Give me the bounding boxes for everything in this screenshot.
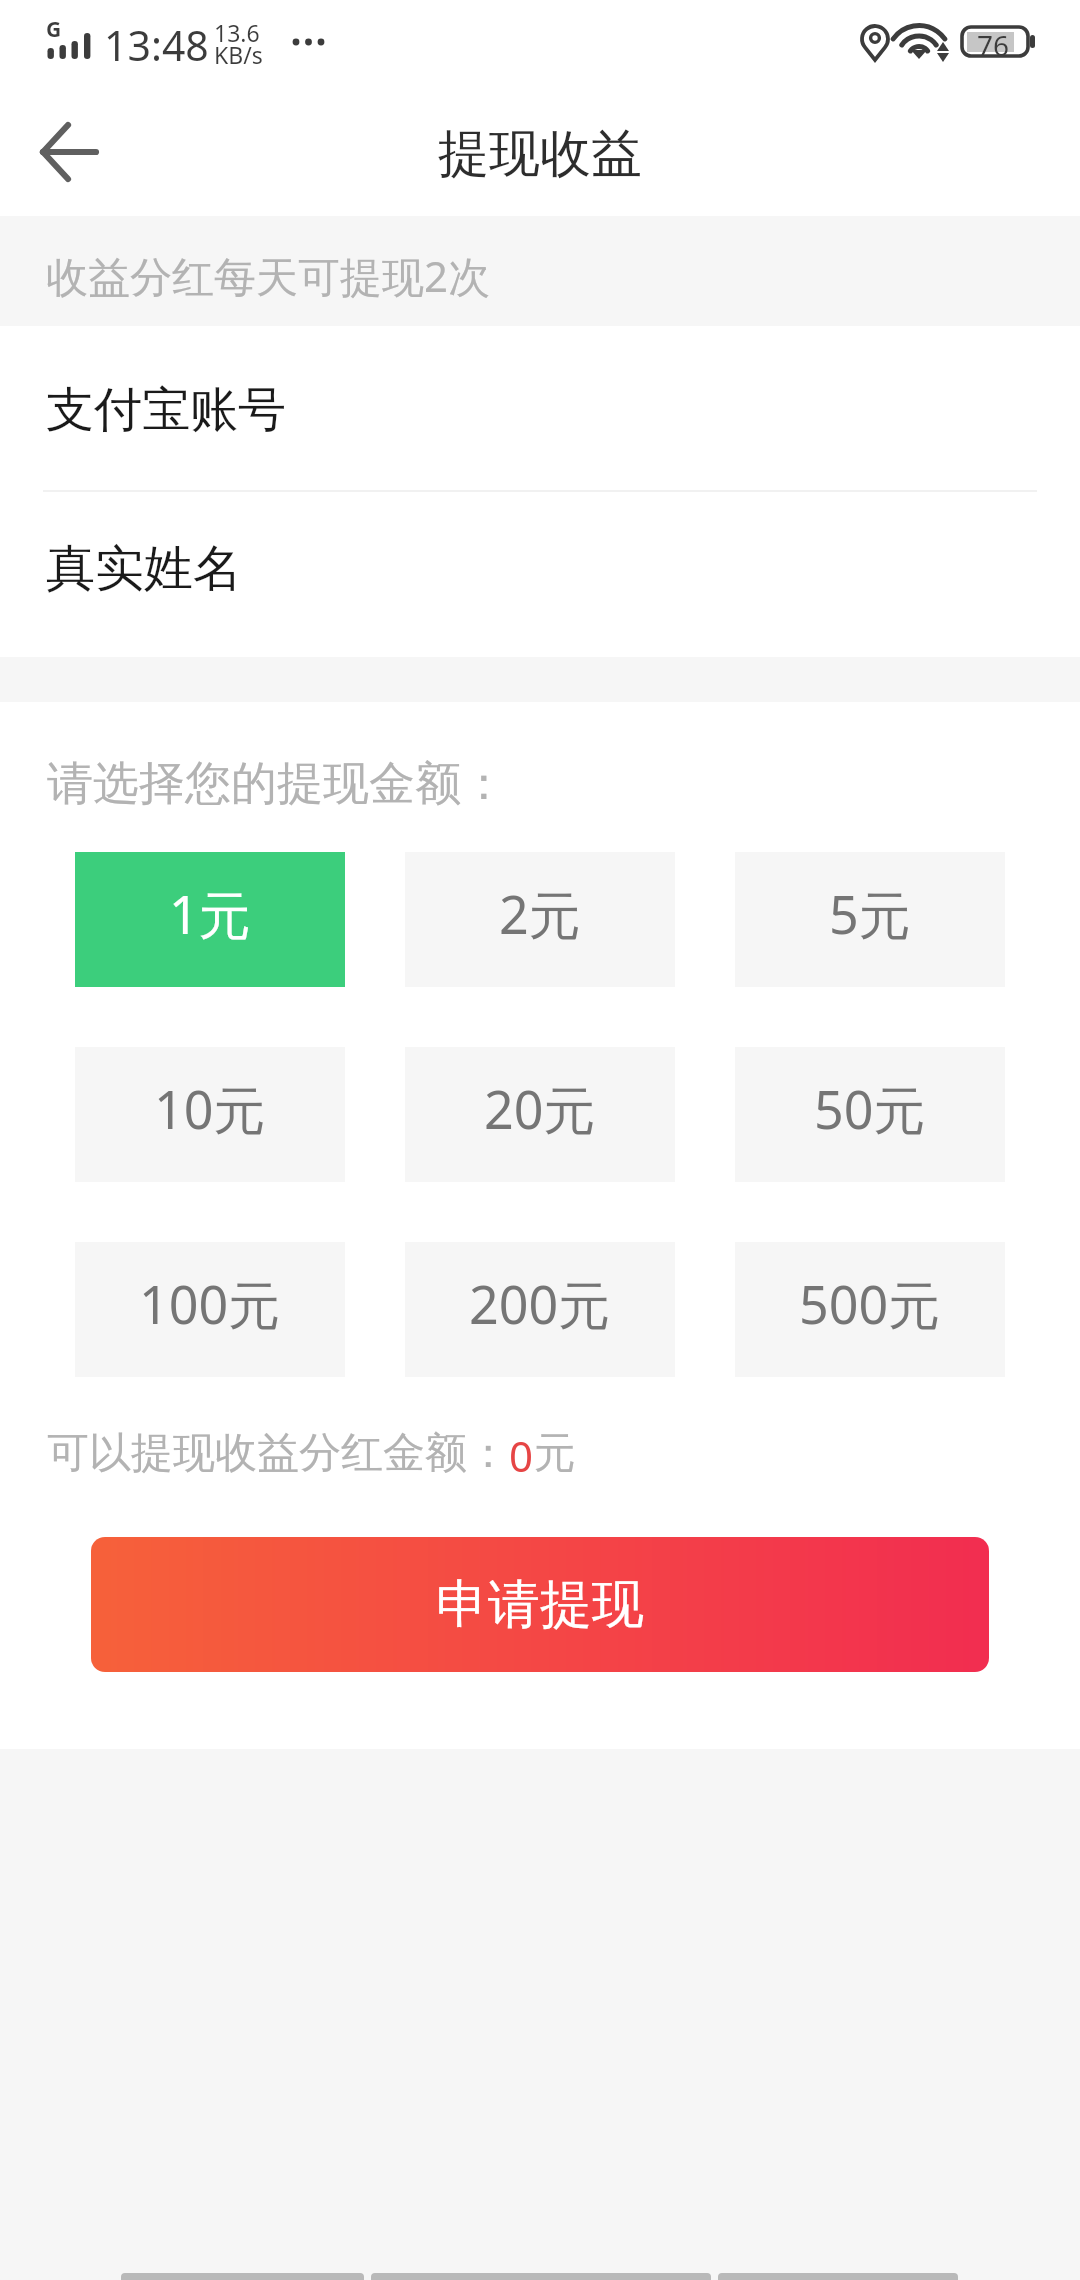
staticText: 2元	[499, 878, 581, 949]
staticText: 76	[977, 26, 1010, 64]
staticText: KB/s	[214, 39, 263, 70]
button[interactable]: 真实姓名	[0, 492, 1080, 657]
staticText: 500元	[799, 1268, 941, 1339]
staticText: 可以提现收益分红金额：	[47, 1427, 509, 1480]
staticText: 请选择您的提现金额：	[47, 755, 507, 813]
button[interactable]: 2元	[405, 852, 675, 987]
button[interactable]: 50元	[735, 1047, 1005, 1182]
button[interactable]: 5元	[735, 852, 1005, 987]
button[interactable]: 100元	[75, 1242, 345, 1377]
staticText: 5元	[829, 878, 911, 949]
staticText: 0	[509, 1427, 534, 1484]
staticText: 20元	[484, 1073, 596, 1144]
button[interactable]: 500元	[735, 1242, 1005, 1377]
staticText: 元	[534, 1427, 576, 1480]
staticText: G	[46, 15, 62, 44]
button[interactable]: 1元	[75, 852, 345, 987]
staticText: 提现收益	[438, 122, 642, 186]
staticText: 收益分红每天可提现2次	[46, 247, 491, 304]
button[interactable]: 申请提现	[91, 1537, 989, 1672]
staticText: 申请提现	[436, 1572, 644, 1638]
staticText: 支付宝账号	[46, 380, 286, 440]
button[interactable]: 20元	[405, 1047, 675, 1182]
staticText: 50元	[814, 1073, 926, 1144]
button[interactable]: 200元	[405, 1242, 675, 1377]
staticText: 13.6	[214, 17, 260, 48]
staticText: 200元	[469, 1268, 611, 1339]
button[interactable]: 支付宝账号	[0, 326, 1080, 490]
button[interactable]: 10元	[75, 1047, 345, 1182]
staticText: 100元	[139, 1268, 281, 1339]
staticText: 1元	[169, 878, 251, 949]
staticText: 真实姓名	[46, 538, 242, 600]
staticText: 13:48	[104, 17, 209, 73]
staticText: 10元	[154, 1073, 266, 1144]
button[interactable]: Back	[0, 90, 126, 216]
